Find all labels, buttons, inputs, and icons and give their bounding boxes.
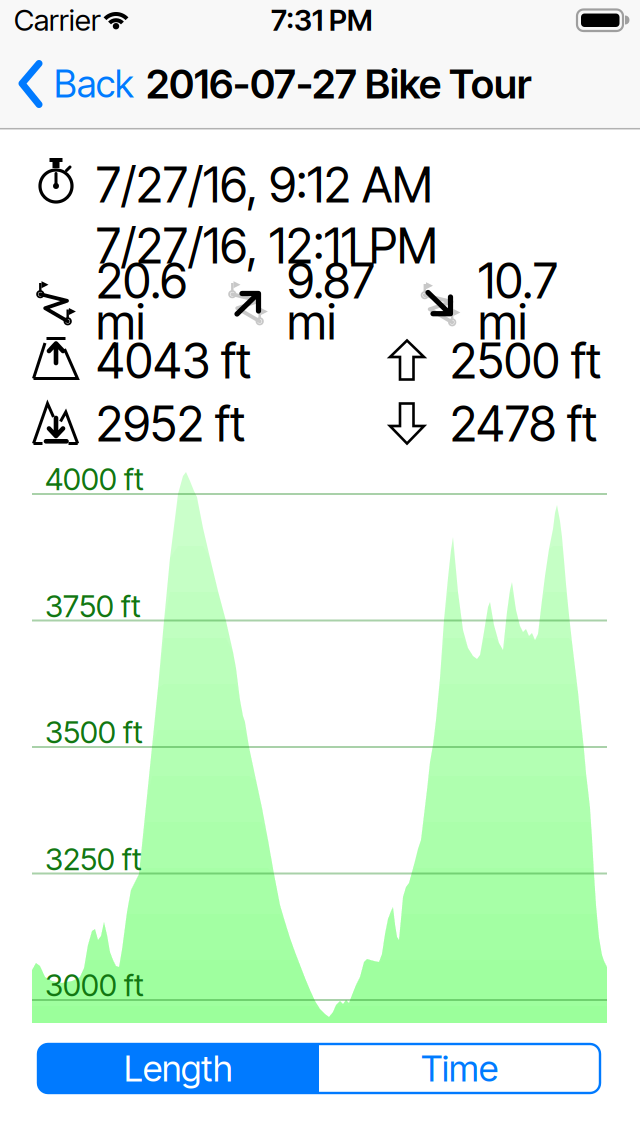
staticText: Carrier (14, 2, 101, 38)
staticText: Time (421, 1047, 498, 1090)
button[interactable]: Back (18, 61, 134, 107)
staticText: 2952 ft (96, 395, 245, 453)
staticText: 4043 ft (96, 332, 251, 390)
staticText: 7:31 PM (271, 2, 373, 38)
button[interactable]: Time (319, 1044, 600, 1093)
staticText: 9.87 (287, 252, 375, 310)
staticText: 3000 ft (45, 966, 144, 1003)
staticText: 2500 ft (450, 332, 601, 390)
staticText: 7/27/16, 9:12 AM (96, 156, 433, 214)
button[interactable]: Length (38, 1044, 319, 1093)
staticText: 3750 ft (45, 587, 141, 624)
staticText: mi (287, 293, 336, 351)
staticText: mi (96, 293, 145, 351)
staticText: 4000 ft (45, 460, 144, 497)
staticText: Back (54, 61, 134, 107)
staticText: mi (478, 293, 527, 351)
staticText: Length (124, 1047, 233, 1090)
staticText: 3500 ft (45, 713, 143, 750)
staticText: 2478 ft (450, 395, 597, 453)
staticText: 3250 ft (45, 840, 142, 877)
staticText: 20.6 (96, 252, 187, 310)
staticText: 2016-07-27 Bike Tour (146, 60, 531, 108)
staticText: 10.7 (478, 252, 558, 310)
staticText: 7/27/16, 12:11 PM (96, 217, 438, 275)
